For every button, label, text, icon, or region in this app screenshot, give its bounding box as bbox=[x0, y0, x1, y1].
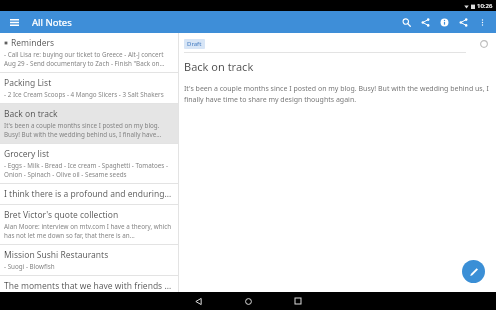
button[interactable]: Packing List bbox=[0, 73, 178, 103]
button[interactable]: I think there is a profound and enduring… bbox=[0, 184, 178, 204]
staticText: Reminders bbox=[11, 37, 55, 49]
button[interactable]: The moments that we have with friends an… bbox=[0, 276, 178, 292]
button[interactable]: Recent apps bbox=[287, 292, 309, 310]
button[interactable]: Search bbox=[397, 13, 416, 32]
button[interactable]: Draft bbox=[184, 39, 205, 49]
staticText: Mission Sushi Restaurants bbox=[4, 249, 109, 261]
staticText: I think there is a profound and enduring… bbox=[4, 188, 173, 200]
button[interactable]: Grocery list bbox=[0, 144, 178, 183]
staticText: - Call Lisa re: buying our ticket to Gre… bbox=[4, 50, 173, 68]
staticText: - 2 Ice Cream Scoops - 4 Mango Slicers -… bbox=[4, 90, 164, 99]
staticText: Bret Victor's quote collection bbox=[4, 209, 119, 221]
staticText: Back on track bbox=[4, 108, 58, 120]
button[interactable]: Share bbox=[416, 13, 435, 32]
button[interactable]: Back bbox=[187, 292, 209, 310]
staticText: All Notes bbox=[32, 16, 72, 29]
staticText: The moments that we have with friends an… bbox=[4, 280, 173, 292]
staticText: Back on track bbox=[184, 59, 254, 74]
staticText: - Eggs - Milk - Bread - Ice cream - Spag… bbox=[4, 161, 173, 179]
staticText: It's been a couple months since I posted… bbox=[184, 84, 491, 104]
button[interactable]: Mission Sushi Restaurants bbox=[0, 245, 178, 275]
staticText: Alan Moore: interview on mtv.com I have … bbox=[4, 222, 173, 240]
button[interactable]: Info bbox=[435, 13, 454, 32]
staticText: Draft bbox=[187, 40, 202, 48]
staticText: Packing List bbox=[4, 77, 52, 89]
staticText: - Suogi - Blowfish bbox=[4, 262, 55, 271]
button[interactable]: Reminders bbox=[0, 33, 178, 72]
button[interactable]: More options bbox=[473, 13, 492, 32]
button[interactable]: Home bbox=[237, 292, 259, 310]
button[interactable]: New note bbox=[462, 260, 485, 283]
button[interactable]: Bret Victor's quote collection bbox=[0, 205, 178, 244]
button[interactable]: Back on track bbox=[0, 104, 178, 143]
button[interactable]: Mark note complete bbox=[477, 37, 491, 51]
staticText: It's been a couple months since I posted… bbox=[4, 121, 173, 139]
staticText: 10:26 bbox=[477, 2, 493, 10]
button[interactable]: Open navigation drawer bbox=[6, 14, 22, 30]
button[interactable]: Share note bbox=[454, 13, 473, 32]
staticText: Grocery list bbox=[4, 148, 50, 160]
